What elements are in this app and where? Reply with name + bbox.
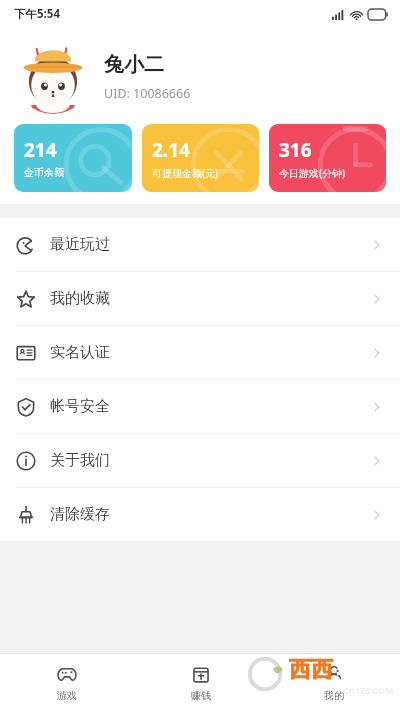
- staticText: 实名认证: [50, 343, 110, 362]
- button[interactable]: 316: [269, 124, 386, 192]
- staticText: UID: 10086666: [104, 85, 191, 102]
- button[interactable]: 赚钱: [134, 654, 267, 710]
- button[interactable]: 兔小二: [16, 40, 384, 114]
- staticText: 游戏: [57, 689, 77, 702]
- staticText: 赚钱: [191, 689, 211, 702]
- button[interactable]: 实名认证: [0, 326, 400, 379]
- button[interactable]: 帐号安全: [0, 380, 400, 433]
- button[interactable]: 最近玩过: [0, 218, 400, 271]
- staticText: 兔小二: [104, 52, 164, 77]
- staticText: 金币余额: [24, 166, 64, 179]
- button[interactable]: 214: [14, 124, 132, 192]
- staticText: CR173.COM: [343, 684, 394, 696]
- staticText: 西西: [289, 656, 333, 684]
- button[interactable]: 2.14: [142, 124, 259, 192]
- button[interactable]: 清除缓存: [0, 488, 400, 541]
- staticText: 2.14: [152, 137, 190, 163]
- staticText: 214: [24, 137, 57, 163]
- staticText: 我的: [324, 689, 344, 702]
- staticText: 316: [279, 137, 312, 163]
- button[interactable]: 关于我们: [0, 434, 400, 487]
- button[interactable]: 游戏: [0, 654, 134, 710]
- staticText: 关于我们: [50, 451, 110, 470]
- staticText: 软件园: [337, 658, 394, 682]
- staticText: 清除缓存: [50, 505, 110, 524]
- staticText: 最近玩过: [50, 235, 110, 254]
- staticText: 我的收藏: [50, 289, 110, 308]
- button[interactable]: 我的: [267, 654, 400, 710]
- staticText: 下午5:54: [14, 6, 60, 22]
- staticText: 帐号安全: [50, 397, 110, 416]
- staticText: 今日游戏(分钟): [279, 166, 345, 180]
- staticText: 可提现金额(元): [152, 166, 218, 180]
- button[interactable]: 我的收藏: [0, 272, 400, 325]
